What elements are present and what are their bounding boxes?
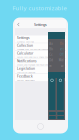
staticText: Ee: [49, 64, 52, 67]
button[interactable]: Legislation: [15, 66, 66, 74]
button[interactable]: Notifications: [15, 59, 66, 66]
staticText: Calculator: [17, 51, 33, 55]
staticText: Notifications: [17, 59, 37, 63]
staticText: Bb: [49, 47, 53, 51]
button[interactable]: Dd: [48, 57, 65, 63]
staticText: Fully customizable: [12, 4, 66, 12]
staticText: Create and manage notifications: [17, 63, 48, 66]
staticText: Settings: [34, 22, 47, 27]
staticText: Collection: [17, 43, 33, 48]
button[interactable]: Key: [57, 116, 64, 119]
staticText: Correct developers: [17, 78, 35, 82]
staticText: General settings: [17, 40, 34, 43]
staticText: Dd: [49, 58, 53, 62]
button[interactable]: Back: [15, 20, 22, 29]
button[interactable]: Feedback: [15, 74, 66, 82]
staticText: Invitation upgrade: [17, 71, 35, 74]
button[interactable]: Collection: [15, 43, 66, 51]
staticText: Secure card and tally check makes: [17, 55, 51, 58]
staticText: Manage your collecting interval: [17, 48, 49, 51]
button[interactable]: Ee: [48, 63, 65, 68]
button[interactable]: Settings: [15, 35, 66, 43]
staticText: Cc: [49, 53, 52, 56]
button[interactable]: Cc: [48, 52, 65, 57]
staticText: Lo: [61, 64, 64, 67]
button[interactable]: Aa: [48, 41, 65, 46]
button[interactable]: Key: [49, 116, 56, 119]
button[interactable]: Key: [49, 112, 56, 115]
staticText: Mid: [59, 58, 64, 62]
staticText: Settings: [17, 36, 30, 40]
staticText: On: [60, 42, 64, 45]
button[interactable]: Calculator: [15, 51, 66, 59]
staticText: Legislation: [17, 66, 35, 71]
staticText: Off: [60, 53, 64, 56]
button[interactable]: Bb: [48, 46, 65, 52]
button[interactable]: Key: [57, 112, 64, 115]
staticText: Feedback: [17, 74, 33, 78]
staticText: Set: [60, 47, 64, 51]
staticText: Aa: [49, 42, 52, 45]
